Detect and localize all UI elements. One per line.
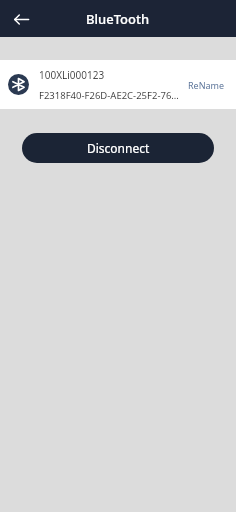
staticText: ReName bbox=[188, 79, 225, 91]
button[interactable]: ReName bbox=[185, 76, 228, 94]
staticText: BlueTooth bbox=[86, 10, 150, 28]
button[interactable]: Disconnect bbox=[22, 133, 214, 163]
button[interactable]: 100XLi000123 bbox=[0, 60, 236, 109]
staticText: Disconnect bbox=[87, 140, 150, 156]
button[interactable]: Back bbox=[6, 4, 36, 34]
staticText: 100XLi000123 bbox=[39, 68, 105, 82]
staticText: F2318F40-F26D-AE2C-25F2-76A… bbox=[39, 89, 179, 102]
